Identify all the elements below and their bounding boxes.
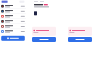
button[interactable] (32, 37, 56, 42)
button[interactable] (1, 36, 25, 41)
button[interactable] (68, 37, 92, 42)
